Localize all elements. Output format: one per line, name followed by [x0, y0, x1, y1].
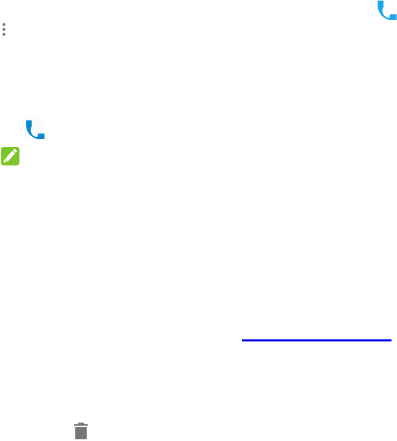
button[interactable]: More options: [0, 20, 12, 38]
button[interactable]: Call: [375, 0, 397, 20]
button[interactable]: Call: [24, 118, 45, 139]
button[interactable]: Edit: [1, 147, 19, 165]
button[interactable]: Delete: [71, 420, 90, 439]
